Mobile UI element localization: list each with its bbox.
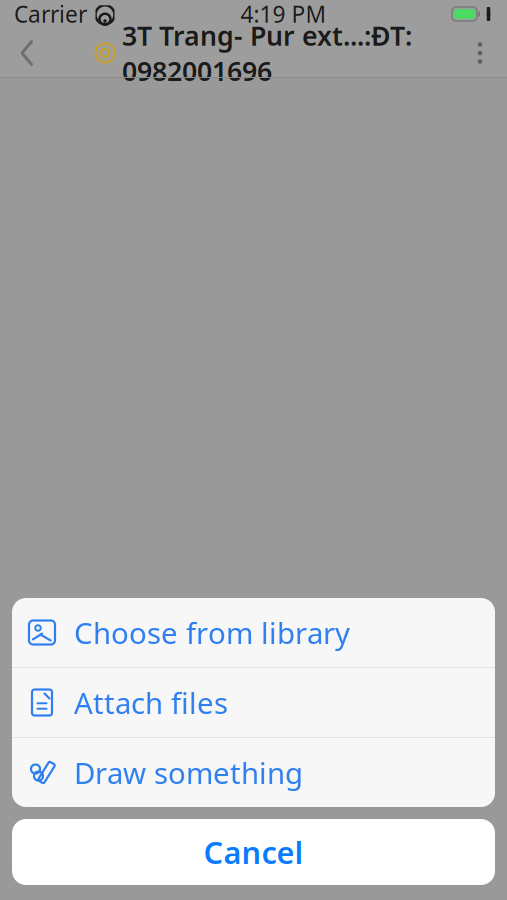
staticText: Carrier <box>14 0 87 29</box>
staticText: 3T Trang- Pur ext...:ĐT:0982001696 <box>122 18 412 88</box>
staticText: Cancel <box>203 832 303 872</box>
button[interactable]: Draw something <box>12 738 495 807</box>
button[interactable]: Attach files <box>12 668 495 737</box>
staticText: Draw something <box>74 753 303 792</box>
staticText: 4:19 PM <box>240 0 326 29</box>
staticText: Choose from library <box>74 613 350 652</box>
button[interactable]: More options <box>453 28 507 78</box>
button[interactable]: Choose from library <box>12 598 495 667</box>
button[interactable]: Back <box>0 28 54 78</box>
staticText: Attach files <box>74 683 228 722</box>
button[interactable]: Cancel <box>12 819 495 885</box>
